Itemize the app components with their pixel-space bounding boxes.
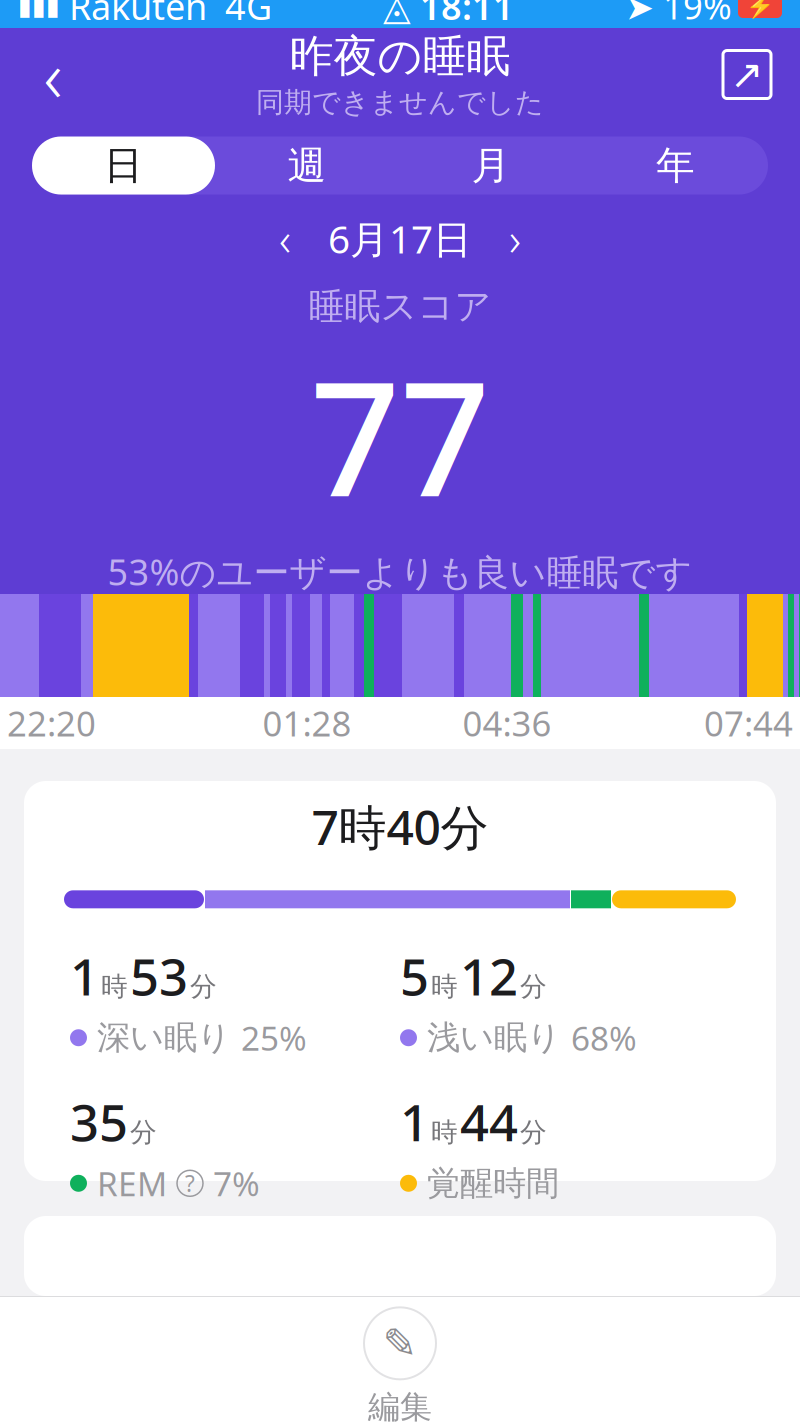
staticText: ✎ [382, 1320, 417, 1367]
staticText: 分 [130, 1116, 157, 1149]
staticText: 1 [400, 1088, 429, 1155]
button[interactable]: 前の日 [255, 210, 315, 266]
button[interactable]: 共有 [712, 39, 782, 109]
staticText: ‹ [43, 27, 62, 122]
staticText: 01:28 [262, 700, 351, 746]
staticText: ▮▮▮ [18, 0, 60, 20]
staticText: 昨夜の睡眠 [289, 29, 510, 83]
staticText: REM [97, 1161, 167, 1205]
staticText: 22:20 [7, 700, 96, 746]
staticText: ◬ 18:11 [383, 0, 514, 30]
staticText: 深い眠り [97, 1017, 231, 1058]
staticText: 時 [101, 970, 128, 1003]
staticText: ↗ [730, 52, 764, 97]
staticText: 12 [460, 942, 518, 1010]
staticText: 6月17日 [328, 213, 472, 264]
button[interactable]: 日 [32, 136, 215, 194]
staticText: 覚醒時間 [427, 1163, 559, 1204]
button[interactable]: 週 [215, 136, 399, 194]
staticText: 同期できませんでした [256, 85, 544, 120]
staticText: 07:44 [704, 700, 793, 746]
staticText: Rakuten 4G [60, 0, 272, 30]
staticText: 睡眠スコア [308, 284, 491, 329]
staticText: ⚡ [746, 0, 774, 19]
staticText: 時 [431, 970, 458, 1003]
staticText: 浅い眠り [427, 1017, 561, 1058]
button[interactable]: 年 [583, 136, 768, 194]
button[interactable]: 次の日 [485, 210, 545, 266]
button[interactable]: 戻る [18, 39, 88, 109]
staticText: 日 [104, 142, 143, 189]
staticText: ? [185, 1168, 195, 1198]
staticText: 分 [190, 970, 217, 1003]
staticText: 53 [130, 942, 188, 1010]
staticText: 時 [431, 1116, 458, 1149]
staticText: 分 [520, 1116, 547, 1149]
staticText: 年 [656, 142, 695, 189]
staticText: 週 [287, 142, 326, 189]
staticText: 7時40分 [311, 795, 488, 858]
staticText: 68% [571, 1016, 637, 1060]
staticText: 編集 [368, 1387, 432, 1423]
staticText: 77 [310, 331, 490, 540]
staticText: 25% [241, 1016, 307, 1060]
staticText: 7% [213, 1161, 260, 1205]
staticText: › [509, 208, 521, 269]
staticText: 35 [70, 1088, 128, 1155]
staticText: ➤ 19% [625, 0, 732, 29]
staticText: ‹ [279, 208, 291, 269]
staticText: 分 [520, 970, 547, 1003]
button[interactable]: 月 [399, 136, 583, 194]
staticText: 44 [460, 1088, 518, 1155]
staticText: 1 [70, 942, 99, 1010]
staticText: 04:36 [462, 700, 551, 746]
staticText: 月 [471, 142, 510, 189]
button[interactable]: ✎ [300, 1297, 500, 1423]
staticText: 53%のユーザーよりも良い睡眠です [107, 548, 692, 595]
staticText: 5 [400, 942, 429, 1010]
